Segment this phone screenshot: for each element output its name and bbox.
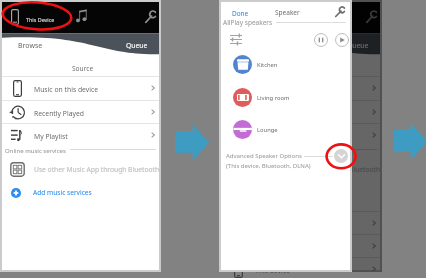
staticText: AllPlay speakers (223, 18, 273, 27)
button[interactable]: DLNA renderer (223, 235, 380, 258)
staticText: My Playlist (255, 132, 289, 141)
staticText: Online music services (5, 147, 66, 155)
button[interactable]: Use other Music App through Bluetooth (223, 157, 380, 181)
staticText: Browse (18, 41, 43, 51)
staticText: Kitchen (257, 61, 278, 69)
button[interactable]: Music on this device (2, 77, 159, 100)
button[interactable]: Bluetooth speaker (223, 212, 380, 235)
staticText: Browse (239, 41, 264, 51)
staticText: Lounge (257, 126, 278, 134)
button[interactable]: My Playlist (2, 124, 159, 147)
staticText: This device (255, 266, 290, 275)
button[interactable]: Kitchen (221, 53, 350, 75)
staticText: (This device, Bluetooth, DLNA) (226, 162, 311, 170)
button[interactable]: Add music services (223, 181, 380, 204)
staticText: Done (232, 9, 249, 18)
staticText: Advanced Speaker Options (226, 152, 302, 160)
button[interactable]: My Playlist (223, 124, 380, 147)
button[interactable]: Lounge (221, 118, 350, 140)
button[interactable]: Expand advanced speaker options (334, 149, 348, 163)
staticText: Use other Music App through Bluetooth (255, 165, 380, 174)
staticText: My Playlist (34, 132, 68, 141)
button[interactable]: Browse (239, 41, 269, 51)
staticText: Source (72, 64, 94, 73)
button[interactable]: Queue (126, 41, 152, 51)
staticText: Music on this device (34, 85, 99, 94)
staticText: Recently Played (34, 109, 84, 118)
button[interactable]: Pause (314, 33, 328, 47)
button[interactable]: Recently Played (223, 101, 380, 124)
staticText: This Device (247, 16, 276, 23)
staticText: Add music services (33, 188, 92, 197)
button[interactable]: Music on this device (223, 77, 380, 100)
staticText: Use other Music App through Bluetooth (34, 165, 159, 174)
button[interactable]: Settings (366, 11, 377, 23)
button[interactable]: Play (335, 33, 349, 47)
button[interactable]: Done (232, 9, 249, 18)
button[interactable]: Queue (347, 41, 373, 51)
button[interactable]: Settings (145, 11, 156, 23)
staticText: This Device (26, 16, 55, 23)
button[interactable]: This device (223, 258, 380, 278)
button[interactable]: Settings (335, 7, 345, 17)
staticText: Living room (257, 94, 290, 102)
button[interactable]: Equalizer (230, 35, 242, 44)
button[interactable]: Browse (18, 41, 48, 51)
staticText: Speaker (275, 8, 300, 17)
staticText: Online music services (226, 147, 287, 155)
button[interactable]: Add music services (2, 181, 159, 204)
button[interactable]: Living room (221, 86, 350, 108)
button[interactable]: Use other Music App through Bluetooth (2, 157, 159, 181)
button[interactable]: Recently Played (2, 101, 159, 124)
staticText: Queue (126, 41, 148, 50)
staticText: Queue (347, 41, 369, 50)
